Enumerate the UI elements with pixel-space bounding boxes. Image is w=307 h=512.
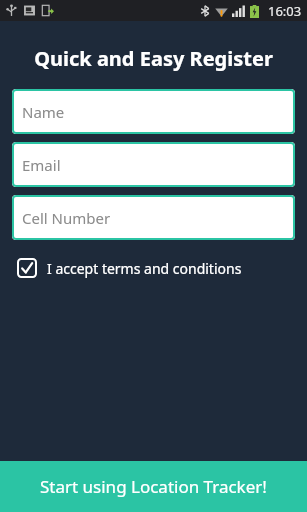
staticText: I accept terms and conditions bbox=[47, 259, 242, 278]
staticText: Name bbox=[22, 102, 65, 122]
button[interactable]: Start using Location Tracker! bbox=[0, 461, 307, 512]
button[interactable]: Accept terms and conditions bbox=[12, 254, 295, 282]
staticText: Start using Location Tracker! bbox=[40, 475, 267, 498]
button[interactable]: Email bbox=[12, 142, 295, 187]
other: Accept terms and conditions bbox=[17, 258, 37, 278]
staticText: Quick and Easy Register bbox=[0, 45, 307, 72]
button[interactable]: Cell Number bbox=[12, 195, 295, 240]
staticText: Cell Number bbox=[22, 208, 111, 228]
staticText: 16:03 bbox=[268, 2, 302, 20]
staticText: Email bbox=[22, 155, 61, 175]
button[interactable]: Name bbox=[12, 89, 295, 134]
